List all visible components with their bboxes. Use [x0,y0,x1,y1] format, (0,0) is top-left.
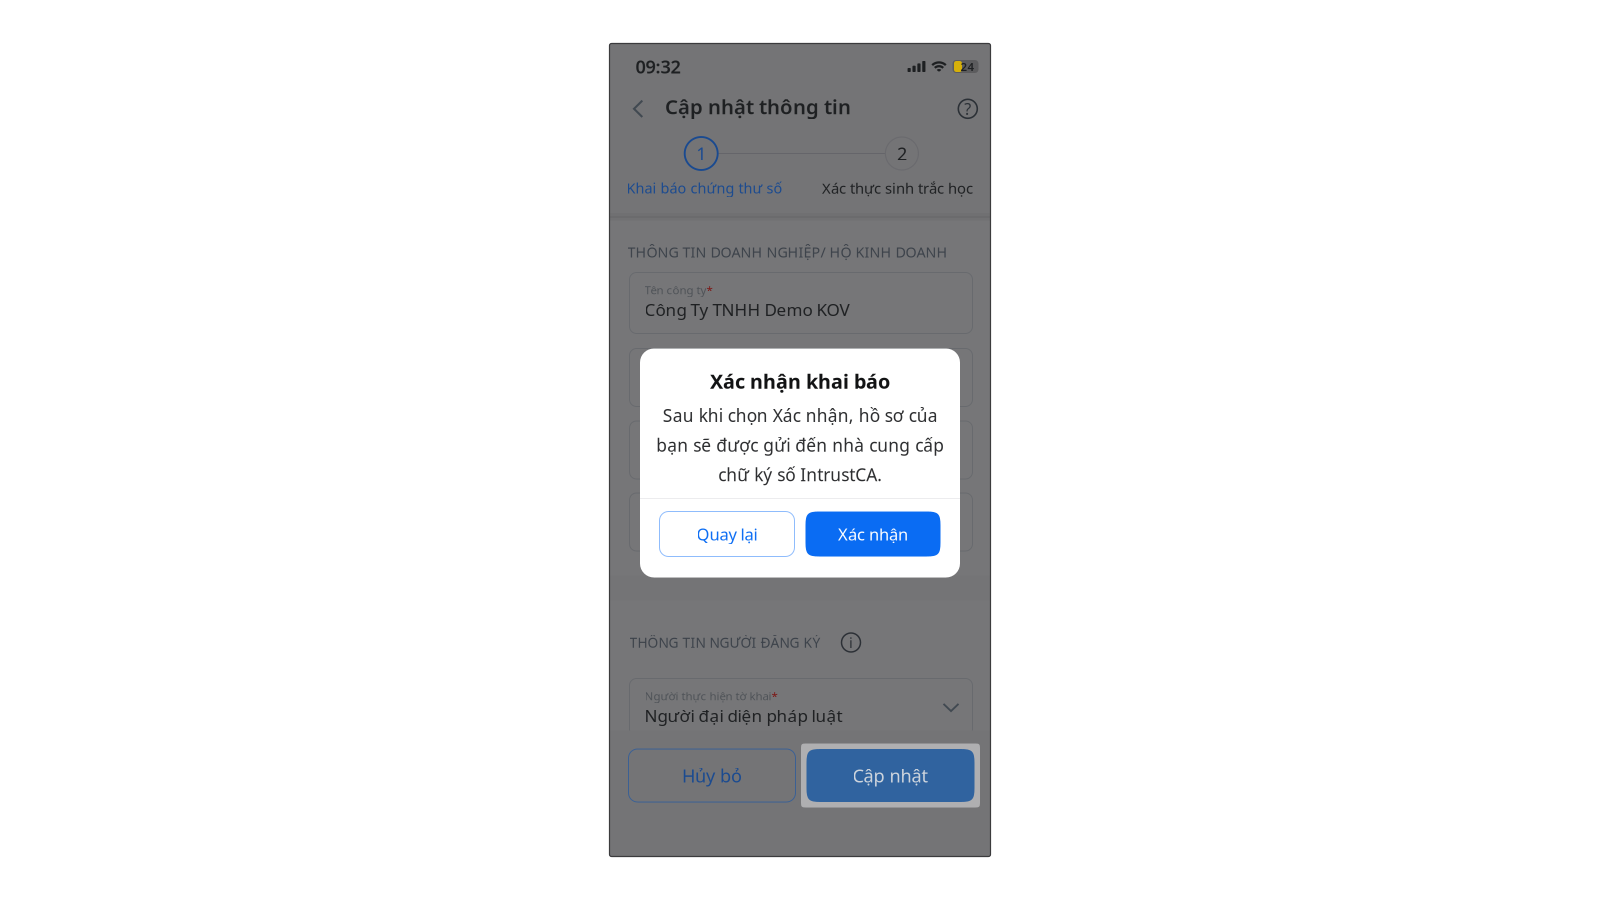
staticText: Xác thực sinh trắc học [822,178,973,198]
staticText: 1 [696,141,706,166]
staticText: 24 [960,59,974,74]
staticText: Xác nhận [838,523,908,545]
staticText: 2 [897,141,907,166]
button[interactable]: Form field [629,348,972,406]
staticText: Hủy bỏ [682,763,742,788]
staticText: ? [964,98,971,120]
button[interactable]: Quay lại [659,511,794,556]
button[interactable]: Form field [629,493,972,551]
button[interactable]: Người thực hiện tờ khai [629,678,972,736]
staticText: Sau khi chọn Xác nhận, hồ sơ của bạn sẽ … [656,404,944,486]
button[interactable]: Hủy bỏ [628,749,795,802]
staticText: THÔNG TIN NGƯỜI ĐĂNG KÝ [629,633,820,652]
staticText: Người thực hiện tờ khai [644,688,771,704]
staticText: Quay lại [696,523,757,545]
button[interactable]: Help [949,90,987,128]
button[interactable]: Form field [629,421,972,479]
button[interactable]: Tên công ty [629,272,972,333]
staticText: Tên công ty [644,282,706,298]
staticText: THÔNG TIN DOANH NGHIỆP/ HỘ KINH DOANH [627,242,947,262]
staticText: Công Ty TNHH Demo KOV [644,298,849,321]
button[interactable]: Xác nhận [805,511,940,556]
staticText: i [849,632,853,652]
staticText: 09:32 [635,54,680,79]
staticText: Cập nhật [852,763,928,788]
button[interactable]: Cập nhật [801,743,980,807]
staticText: Xác nhận khai báo [710,368,890,394]
staticText: Người đại diện pháp luật [644,704,842,727]
staticText: * [706,282,712,298]
staticText: Cập nhật thông tin [665,93,851,120]
staticText: Khai báo chứng thư số [626,178,782,198]
staticText: * [771,688,777,704]
button[interactable]: Back [618,88,658,130]
